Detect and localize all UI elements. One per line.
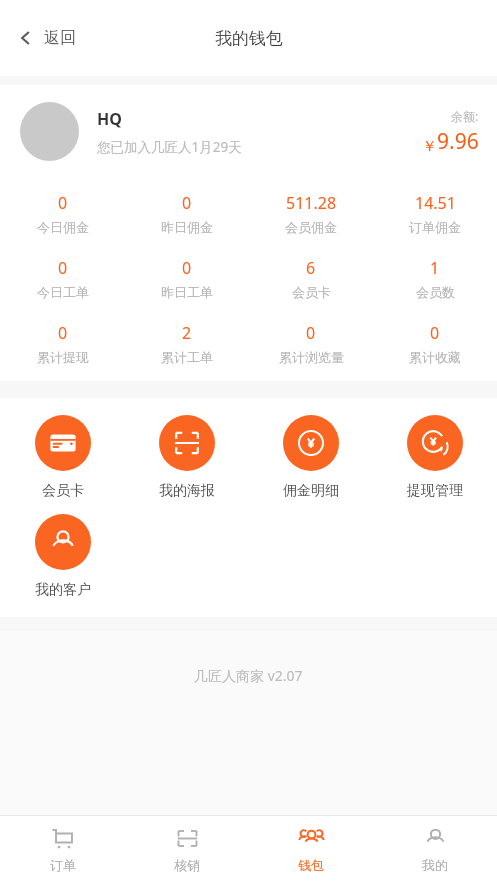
staticText: 我的钱包 <box>215 28 283 49</box>
button[interactable]: 佣金明细 <box>249 415 373 500</box>
button[interactable]: 0 <box>0 322 125 365</box>
staticText: 0 <box>58 192 68 214</box>
button[interactable]: 14.51 <box>373 192 497 235</box>
button[interactable]: 0 <box>125 192 249 235</box>
staticText: 几匠人商家 v2.07 <box>194 666 303 685</box>
staticText: 您已加入几匠人1月29天 <box>97 138 242 156</box>
button[interactable]: 钱包 <box>249 816 373 883</box>
button[interactable]: 0 <box>373 322 497 365</box>
staticText: 返回 <box>44 28 76 48</box>
button[interactable]: 核销 <box>125 816 249 883</box>
staticText: 0 <box>430 322 440 344</box>
button[interactable]: 0 <box>0 192 125 235</box>
staticText: 0 <box>58 322 68 344</box>
staticText: 0 <box>306 322 316 344</box>
staticText: 昨日佣金 <box>161 219 213 235</box>
staticText: 订单佣金 <box>409 219 461 235</box>
button[interactable]: 6 <box>249 257 373 300</box>
button[interactable]: 1 <box>373 257 497 300</box>
staticText: 我的海报 <box>159 482 215 500</box>
staticText: 会员数 <box>416 284 455 300</box>
staticText: 0 <box>182 257 192 279</box>
staticText: 核销 <box>174 857 200 873</box>
button[interactable]: 我的客户 <box>0 514 125 599</box>
staticText: 钱包 <box>298 857 324 873</box>
button[interactable]: 会员卡 <box>0 415 125 500</box>
button[interactable]: 0 <box>0 257 125 300</box>
staticText: 6 <box>306 257 316 279</box>
staticText: 佣金明细 <box>283 482 339 500</box>
staticText: 昨日工单 <box>161 284 213 300</box>
staticText: 今日工单 <box>37 284 89 300</box>
staticText: 会员卡 <box>42 482 84 500</box>
staticText: 会员佣金 <box>285 219 337 235</box>
button[interactable]: 我的海报 <box>125 415 249 500</box>
button[interactable]: 0 <box>249 322 373 365</box>
staticText: 0 <box>182 192 192 214</box>
staticText: 9.96 <box>437 127 479 156</box>
staticText: 1 <box>430 257 440 279</box>
button[interactable]: 0 <box>125 257 249 300</box>
button[interactable]: 2 <box>125 322 249 365</box>
button[interactable]: 提现管理 <box>373 415 497 500</box>
staticText: 提现管理 <box>407 482 463 500</box>
staticText: 2 <box>182 322 192 344</box>
staticText: 0 <box>58 257 68 279</box>
button[interactable]: 我的 <box>373 816 497 883</box>
staticText: 累计工单 <box>161 349 213 365</box>
staticText: HQ <box>97 108 122 130</box>
button[interactable]: 返回 <box>10 22 84 54</box>
staticText: 累计收藏 <box>409 349 461 365</box>
staticText: 累计提现 <box>37 349 89 365</box>
staticText: 会员卡 <box>292 284 331 300</box>
staticText: ￥ <box>422 137 437 156</box>
staticText: 今日佣金 <box>37 219 89 235</box>
staticText: 余额: <box>451 108 479 124</box>
staticText: 订单 <box>50 857 76 873</box>
staticText: 我的 <box>422 857 448 873</box>
staticText: 累计浏览量 <box>279 349 344 365</box>
staticText: 511.28 <box>286 192 337 214</box>
staticText: 14.51 <box>415 192 456 214</box>
button[interactable]: 订单 <box>0 816 125 883</box>
button[interactable]: 511.28 <box>249 192 373 235</box>
staticText: 我的客户 <box>35 581 91 599</box>
